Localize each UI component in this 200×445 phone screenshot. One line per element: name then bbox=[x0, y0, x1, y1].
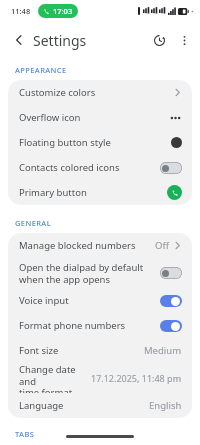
staticText: Open the dialpad by default when the app… bbox=[19, 261, 144, 285]
button[interactable] bbox=[160, 267, 182, 279]
staticText: Medium bbox=[144, 344, 182, 357]
button[interactable]: Customize colors bbox=[8, 80, 192, 105]
staticText: Format phone numbers bbox=[19, 319, 126, 332]
button[interactable]: Call history bbox=[146, 27, 172, 53]
staticText: 17.12.2025, 11:48 pm bbox=[91, 372, 182, 384]
button[interactable]: Open the dialpad by default when the app… bbox=[8, 258, 192, 288]
button[interactable]: Font size bbox=[8, 338, 192, 363]
staticText: Change date and time format bbox=[19, 363, 85, 393]
staticText: Off bbox=[155, 239, 169, 252]
button[interactable] bbox=[160, 320, 182, 332]
staticText: Language bbox=[19, 399, 64, 412]
staticText: Settings bbox=[33, 31, 87, 50]
staticText: Overflow icon bbox=[19, 111, 81, 124]
button[interactable]: Contacts colored icons bbox=[8, 155, 192, 180]
staticText: Customize colors bbox=[19, 86, 96, 99]
staticText: 17:03 bbox=[53, 6, 73, 16]
button[interactable]: More options bbox=[172, 28, 196, 52]
staticText: Contacts colored icons bbox=[19, 161, 120, 174]
button[interactable]: Change date and time format bbox=[8, 363, 192, 393]
button[interactable]: Format phone numbers bbox=[8, 313, 192, 338]
staticText: Manage blocked numbers bbox=[19, 239, 136, 252]
button[interactable]: Back bbox=[6, 27, 32, 53]
staticText: 11:48 bbox=[11, 6, 31, 16]
staticText: Font size bbox=[19, 344, 59, 357]
staticText: Voice input bbox=[19, 294, 69, 307]
button[interactable]: Floating button style bbox=[8, 130, 192, 155]
staticText: Primary button bbox=[19, 186, 87, 199]
button[interactable] bbox=[160, 295, 182, 307]
button[interactable]: Manage blocked numbers bbox=[8, 233, 192, 258]
button[interactable] bbox=[160, 162, 182, 174]
button[interactable]: Overflow icon bbox=[8, 105, 192, 130]
staticText: TABS bbox=[15, 429, 35, 439]
button[interactable]: Language bbox=[8, 393, 192, 418]
staticText: GENERAL bbox=[15, 218, 52, 228]
button[interactable]: Voice input bbox=[8, 288, 192, 313]
staticText: Floating button style bbox=[19, 136, 111, 149]
button[interactable]: Primary button bbox=[8, 180, 192, 205]
staticText: APPEARANCE bbox=[15, 65, 67, 75]
staticText: English bbox=[149, 399, 182, 412]
